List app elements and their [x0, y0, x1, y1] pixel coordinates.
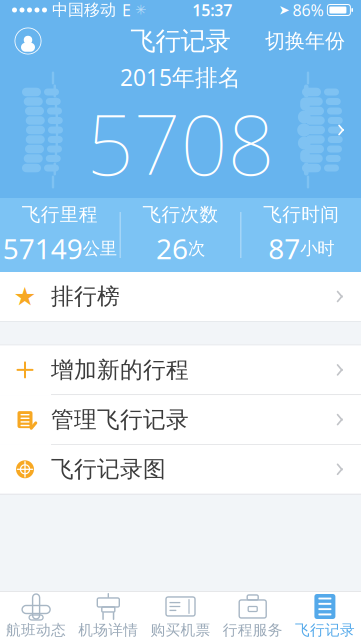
- button[interactable]: 航班动态: [0, 592, 72, 640]
- staticText: 5708: [86, 88, 274, 198]
- staticText: 航班动态: [6, 621, 66, 639]
- staticText: 飞行记录: [130, 25, 230, 56]
- staticText: 小时: [300, 238, 334, 259]
- staticText: 26: [156, 230, 188, 267]
- button[interactable]: 增加新的行程: [0, 345, 361, 395]
- button[interactable]: 个人中心: [6, 21, 50, 61]
- staticText: 公里: [83, 238, 117, 259]
- staticText: 飞行里程: [22, 203, 98, 226]
- staticText: 购买机票: [150, 621, 210, 639]
- staticText: 行程服务: [223, 621, 283, 639]
- staticText: 中国移动: [52, 0, 116, 20]
- button[interactable]: 购买机票: [144, 592, 217, 640]
- staticText: 2015年排名: [120, 62, 241, 92]
- staticText: 57149: [3, 230, 83, 267]
- button[interactable]: 切换年份: [255, 21, 355, 61]
- staticText: 管理飞行记录: [51, 406, 189, 433]
- staticText: 切换年份: [265, 29, 345, 53]
- button[interactable]: 飞行记录: [289, 592, 361, 640]
- staticText: 86%: [292, 0, 323, 21]
- staticText: 飞行时间: [263, 203, 339, 226]
- staticText: 排行榜: [51, 283, 120, 310]
- staticText: 飞行记录: [295, 621, 355, 639]
- staticText: 飞行记录图: [51, 455, 166, 483]
- staticText: 次: [188, 238, 205, 259]
- staticText: ★: [13, 282, 36, 311]
- button[interactable]: 机场详情: [72, 592, 144, 640]
- button[interactable]: 管理飞行记录: [0, 395, 361, 445]
- staticText: 机场详情: [78, 621, 138, 639]
- button[interactable]: ★: [0, 272, 361, 321]
- staticText: 飞行次数: [142, 203, 218, 226]
- staticText: ➤: [278, 2, 289, 17]
- staticText: 增加新的行程: [51, 356, 189, 384]
- staticText: E: [122, 0, 131, 21]
- staticText: ✳: [135, 2, 146, 17]
- button[interactable]: 行程服务: [217, 592, 289, 640]
- button[interactable]: 2015年排名: [0, 62, 361, 198]
- button[interactable]: 飞行记录图: [0, 445, 361, 494]
- staticText: 15:37: [192, 0, 232, 21]
- staticText: 87: [268, 230, 300, 267]
